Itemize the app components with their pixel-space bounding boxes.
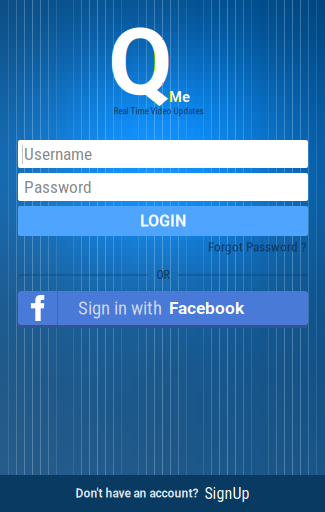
staticText: OR — [156, 268, 169, 282]
staticText: SignUp — [204, 484, 249, 503]
staticText: Password — [24, 177, 92, 197]
button[interactable]: LOGIN — [18, 206, 308, 236]
staticText: Sign in with — [78, 297, 162, 319]
staticText: Facebook — [169, 298, 244, 318]
staticText: Username — [24, 144, 92, 164]
staticText: Don't have an account? — [75, 486, 198, 501]
staticText: Q — [108, 8, 172, 117]
staticText: Me — [169, 88, 190, 106]
staticText: Real Time Video Updates — [113, 105, 203, 116]
staticText: Forgot Password ? — [208, 239, 307, 255]
staticText: LOGIN — [140, 212, 186, 230]
button[interactable]: Sign in with — [18, 291, 308, 328]
button[interactable]: Don't have an account? — [0, 475, 325, 512]
button[interactable]: Forgot Password ? — [197, 239, 307, 255]
